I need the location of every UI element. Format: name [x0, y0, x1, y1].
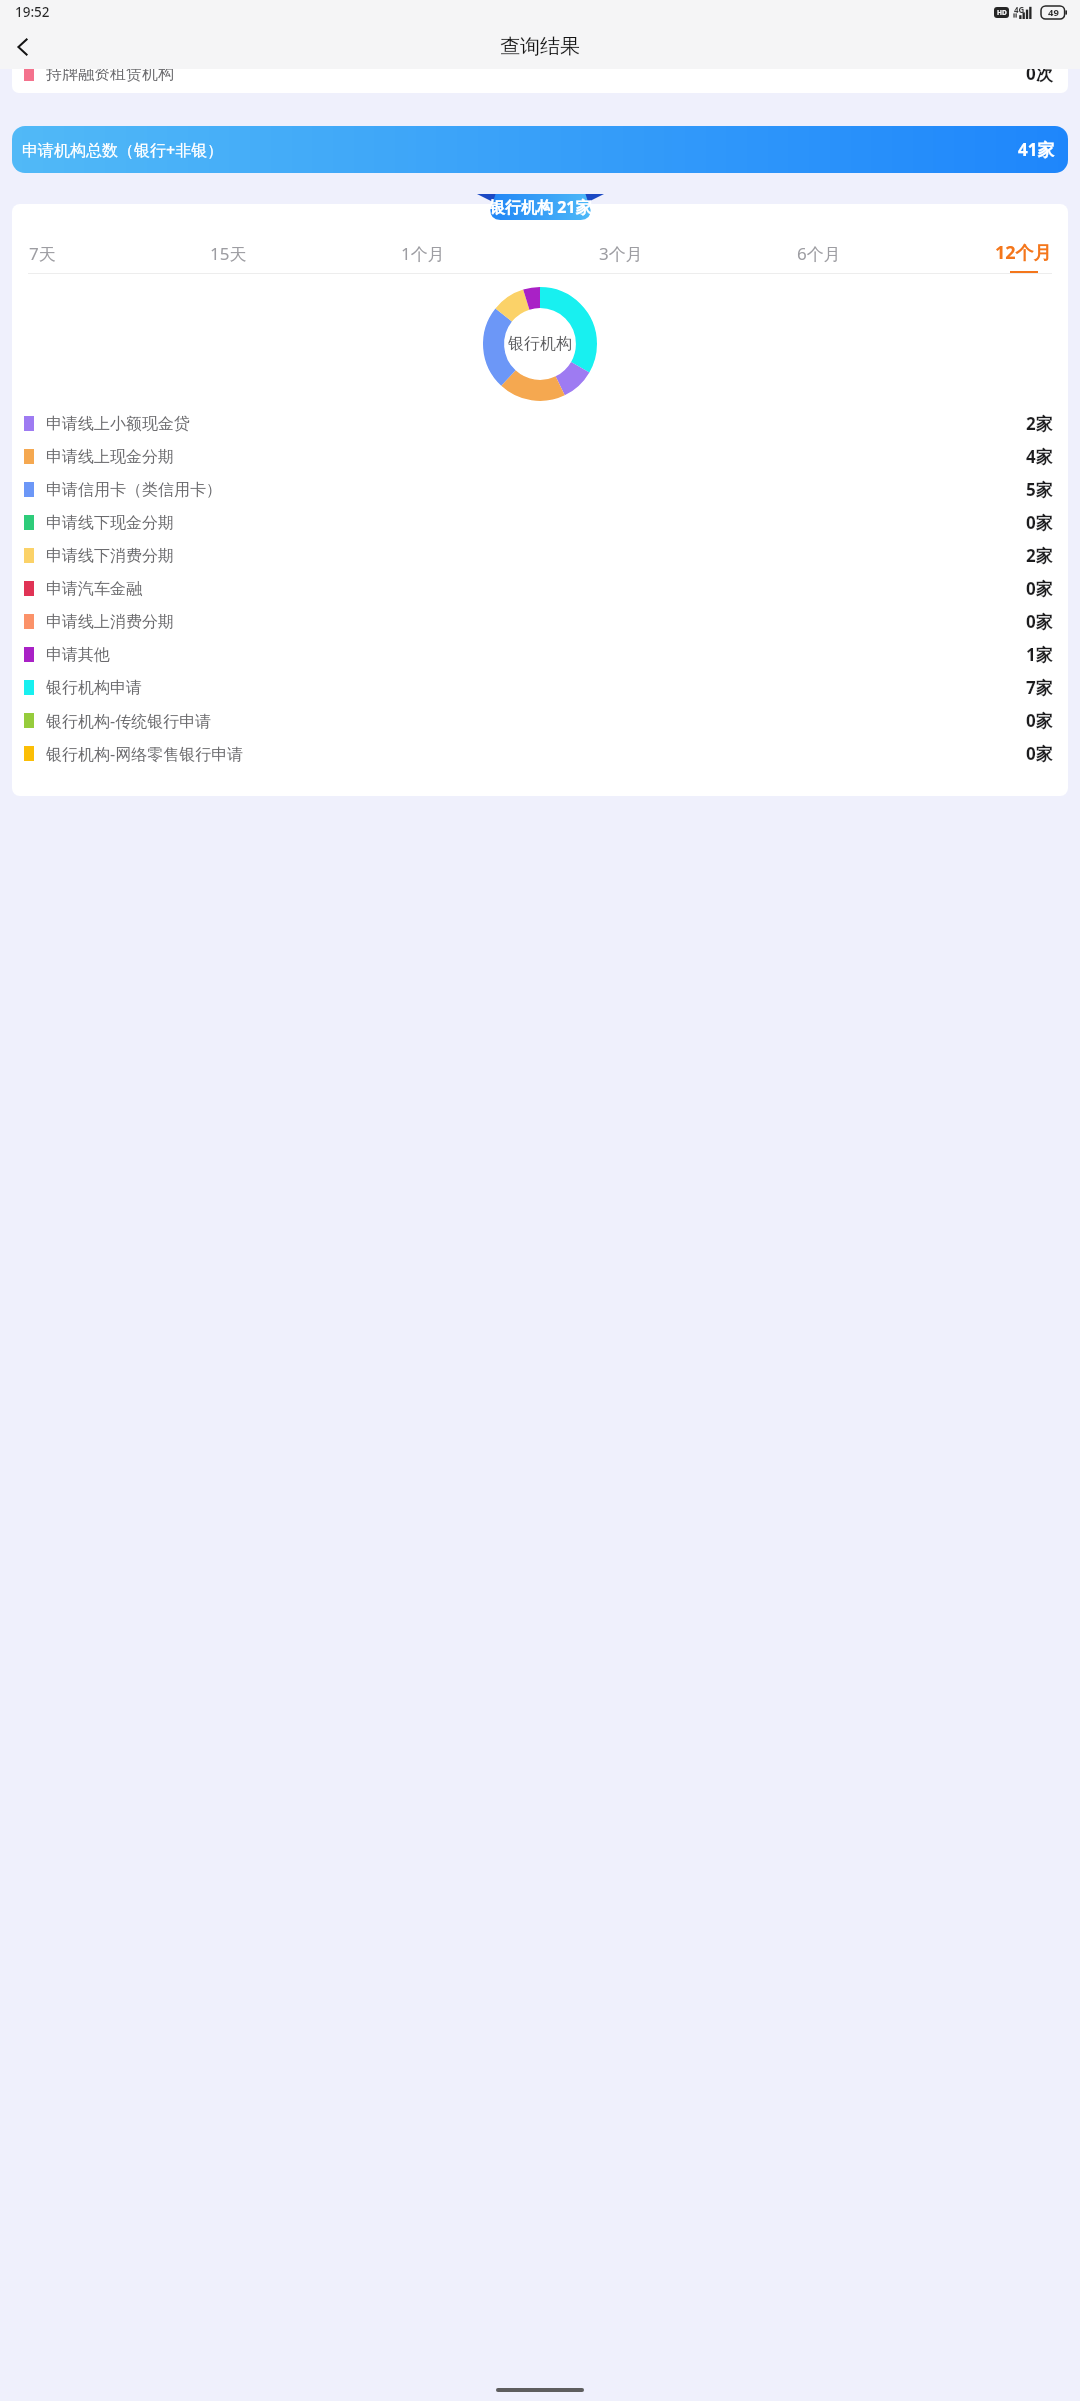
staticText: 申请汽车金融: [46, 579, 142, 599]
staticText: 申请线上现金分期: [46, 447, 174, 467]
staticText: 4家: [1026, 445, 1053, 468]
staticText: 3个月: [599, 242, 643, 265]
button[interactable]: 申请其他: [24, 638, 1053, 671]
staticText: 15天: [210, 242, 247, 265]
staticText: 1个月: [401, 242, 445, 265]
button[interactable]: 申请线上消费分期: [24, 605, 1053, 638]
button[interactable]: 申请信用卡（类信用卡）: [24, 473, 1053, 506]
staticText: 银行机构-传统银行申请: [46, 710, 212, 732]
button[interactable]: 申请线上现金分期: [24, 440, 1053, 473]
staticText: 银行机构: [508, 334, 572, 354]
staticText: 49: [1048, 6, 1059, 19]
staticText: 2家: [1026, 544, 1053, 567]
staticText: 查询结果: [500, 34, 580, 59]
button[interactable]: 申请线下现金分期: [24, 506, 1053, 539]
button[interactable]: 申请汽车金融: [24, 572, 1053, 605]
button[interactable]: 3个月: [599, 242, 643, 273]
staticText: 银行机构-网络零售银行申请: [46, 743, 244, 765]
button[interactable]: 持牌融资租赁机构: [12, 69, 1068, 93]
staticText: 7家: [1026, 676, 1053, 699]
staticText: 0家: [1026, 511, 1053, 534]
staticText: 7天: [29, 242, 56, 265]
staticText: 4G: [1014, 4, 1025, 15]
staticText: 0次: [1026, 69, 1053, 85]
staticText: 申请线上消费分期: [46, 612, 174, 632]
button[interactable]: 1个月: [401, 242, 445, 273]
button[interactable]: 6个月: [797, 242, 841, 273]
button[interactable]: 银行机构-网络零售银行申请: [24, 737, 1053, 770]
staticText: 0家: [1026, 577, 1053, 600]
staticText: 0家: [1026, 610, 1053, 633]
staticText: 12个月: [995, 240, 1052, 265]
button[interactable]: 银行机构申请: [24, 671, 1053, 704]
button[interactable]: 7天: [28, 242, 56, 273]
staticText: 申请其他: [46, 645, 110, 665]
staticText: 申请信用卡（类信用卡）: [46, 480, 222, 500]
button[interactable]: 申请机构总数（银行+非银）: [12, 126, 1068, 173]
staticText: 2家: [1026, 412, 1053, 435]
button[interactable]: 返回: [0, 24, 45, 69]
button[interactable]: 申请线下消费分期: [24, 539, 1053, 572]
staticText: 41家: [1018, 138, 1055, 161]
staticText: 申请线下消费分期: [46, 546, 174, 566]
button[interactable]: 银行机构 21家: [477, 194, 604, 220]
staticText: 0家: [1026, 709, 1053, 732]
staticText: 0家: [1026, 742, 1053, 765]
button[interactable]: 银行机构-传统银行申请: [24, 704, 1053, 737]
staticText: HD: [997, 8, 1007, 17]
staticText: 19:52: [15, 3, 50, 21]
staticText: 1家: [1026, 643, 1053, 666]
staticText: 银行机构申请: [46, 678, 142, 698]
button[interactable]: 12个月: [995, 240, 1052, 273]
staticText: 申请机构总数（银行+非银）: [22, 139, 224, 161]
staticText: 5家: [1026, 478, 1053, 501]
staticText: 银行机构 21家: [489, 196, 592, 218]
button[interactable]: 申请线上小额现金贷: [24, 407, 1053, 440]
staticText: 6个月: [797, 242, 841, 265]
staticText: 持牌融资租赁机构: [46, 69, 174, 84]
button[interactable]: 15天: [210, 242, 247, 273]
staticText: 申请线下现金分期: [46, 513, 174, 533]
staticText: 申请线上小额现金贷: [46, 414, 190, 434]
